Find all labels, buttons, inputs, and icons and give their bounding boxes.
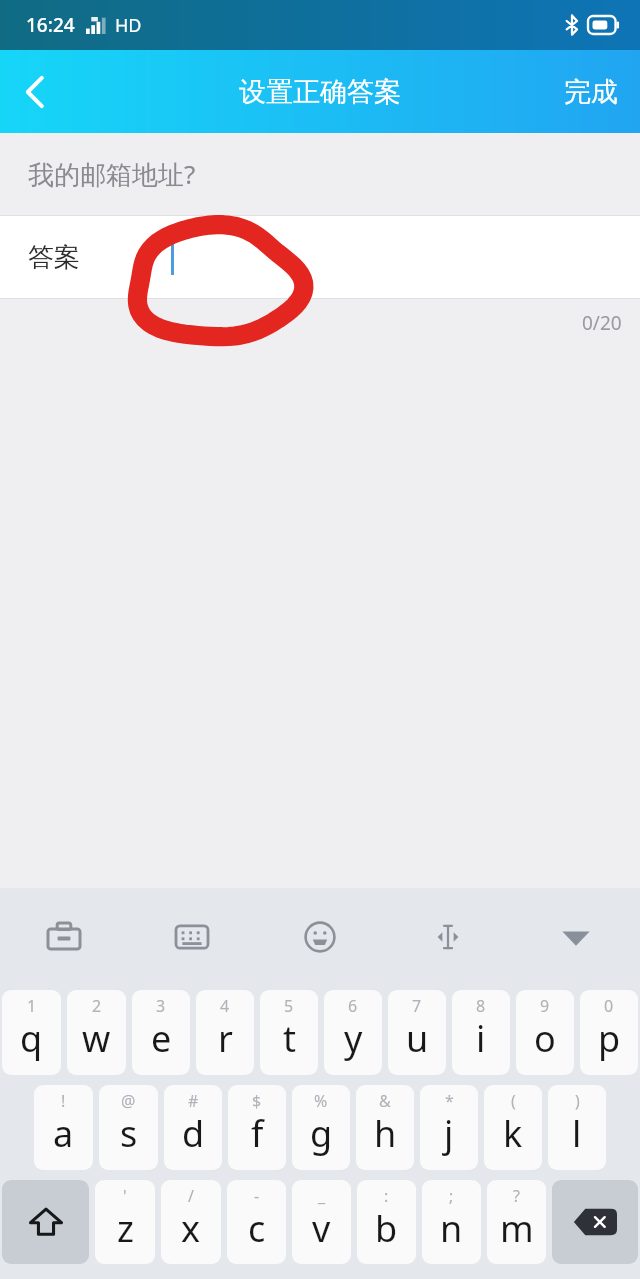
staticText: t	[283, 1014, 296, 1063]
button[interactable]: 答案	[0, 216, 640, 298]
button[interactable]: 2	[67, 990, 126, 1075]
button[interactable]: 3	[132, 990, 190, 1075]
staticText: c	[248, 1204, 266, 1253]
button[interactable]: (	[484, 1085, 542, 1170]
staticText: a	[53, 1109, 74, 1158]
staticText: l	[572, 1109, 582, 1158]
staticText: _	[318, 1185, 326, 1207]
staticText: #	[188, 1090, 199, 1112]
staticText: e	[151, 1014, 172, 1063]
staticText: z	[117, 1204, 134, 1253]
staticText: f	[251, 1109, 264, 1158]
button[interactable]: Emoji	[256, 888, 384, 985]
button[interactable]: )	[548, 1085, 606, 1170]
staticText: @	[121, 1090, 136, 1112]
staticText: j	[444, 1109, 454, 1158]
button[interactable]: $	[228, 1085, 286, 1170]
staticText: ?	[513, 1185, 520, 1207]
staticText: s	[120, 1109, 138, 1158]
button[interactable]: Toolbox	[0, 888, 128, 985]
staticText: 0/20	[582, 310, 622, 336]
button[interactable]: 5	[260, 990, 318, 1075]
staticText: &	[379, 1090, 391, 1112]
button[interactable]: #	[164, 1085, 222, 1170]
button[interactable]: !	[34, 1085, 93, 1170]
button[interactable]: Hide keyboard	[512, 888, 640, 985]
button[interactable]: -	[227, 1180, 286, 1264]
staticText: 6	[348, 995, 358, 1017]
staticText: v	[312, 1204, 331, 1253]
button[interactable]: /	[161, 1180, 221, 1264]
button[interactable]: Back	[0, 50, 70, 133]
button[interactable]: 8	[452, 990, 510, 1075]
staticText: o	[534, 1014, 556, 1063]
button[interactable]: 完成	[542, 50, 640, 133]
button[interactable]: &	[356, 1085, 414, 1170]
button[interactable]: 6	[324, 990, 382, 1075]
staticText: w	[82, 1014, 111, 1063]
button[interactable]: 1	[2, 990, 61, 1075]
staticText: 设置正确答案	[239, 75, 401, 109]
staticText: p	[598, 1014, 621, 1063]
staticText: %	[314, 1090, 328, 1112]
staticText: '	[123, 1185, 127, 1207]
staticText: -	[254, 1185, 260, 1207]
button[interactable]: 0	[580, 990, 638, 1075]
staticText: !	[61, 1090, 66, 1112]
staticText: ;	[449, 1185, 454, 1207]
staticText: u	[406, 1014, 429, 1063]
button[interactable]: Keyboard layout	[128, 888, 256, 985]
staticText: 16:24	[26, 12, 75, 38]
staticText: 完成	[564, 75, 618, 109]
button[interactable]: 9	[516, 990, 574, 1075]
button[interactable]: %	[292, 1085, 350, 1170]
staticText: HD	[115, 13, 142, 38]
staticText: 答案	[28, 241, 80, 274]
button[interactable]: ?	[487, 1180, 546, 1264]
staticText: 2	[92, 995, 102, 1017]
staticText: /	[188, 1185, 194, 1207]
button[interactable]: Backspace	[552, 1180, 638, 1264]
button[interactable]: Shift	[2, 1180, 89, 1264]
button[interactable]: Move cursor	[384, 888, 512, 985]
staticText: 7	[412, 995, 422, 1017]
staticText: 5	[284, 995, 294, 1017]
staticText: k	[503, 1109, 523, 1158]
button[interactable]: 7	[388, 990, 446, 1075]
staticText: :	[384, 1185, 389, 1207]
staticText: h	[374, 1109, 397, 1158]
staticText: d	[182, 1109, 205, 1158]
staticText: m	[500, 1204, 534, 1253]
staticText: 9	[540, 995, 550, 1017]
button[interactable]: ;	[422, 1180, 481, 1264]
staticText: n	[440, 1204, 463, 1253]
staticText: $	[252, 1090, 262, 1112]
staticText: i	[476, 1014, 486, 1063]
staticText: q	[20, 1014, 43, 1063]
button[interactable]: 4	[196, 990, 254, 1075]
staticText: )	[575, 1090, 580, 1112]
button[interactable]: :	[357, 1180, 416, 1264]
staticText: g	[310, 1109, 333, 1158]
button[interactable]: _	[292, 1180, 351, 1264]
staticText: r	[218, 1014, 233, 1063]
staticText: 0	[604, 995, 614, 1017]
staticText: 8	[476, 995, 486, 1017]
staticText: y	[344, 1014, 363, 1063]
button[interactable]: '	[95, 1180, 155, 1264]
staticText: 3	[156, 995, 166, 1017]
button[interactable]: *	[420, 1085, 478, 1170]
staticText: *	[445, 1090, 454, 1112]
staticText: x	[181, 1204, 201, 1253]
staticText: (	[511, 1090, 516, 1112]
staticText: 4	[220, 995, 230, 1017]
staticText: b	[375, 1204, 398, 1253]
staticText: 我的邮箱地址?	[28, 156, 196, 192]
button[interactable]: @	[99, 1085, 158, 1170]
staticText: 1	[27, 995, 37, 1017]
